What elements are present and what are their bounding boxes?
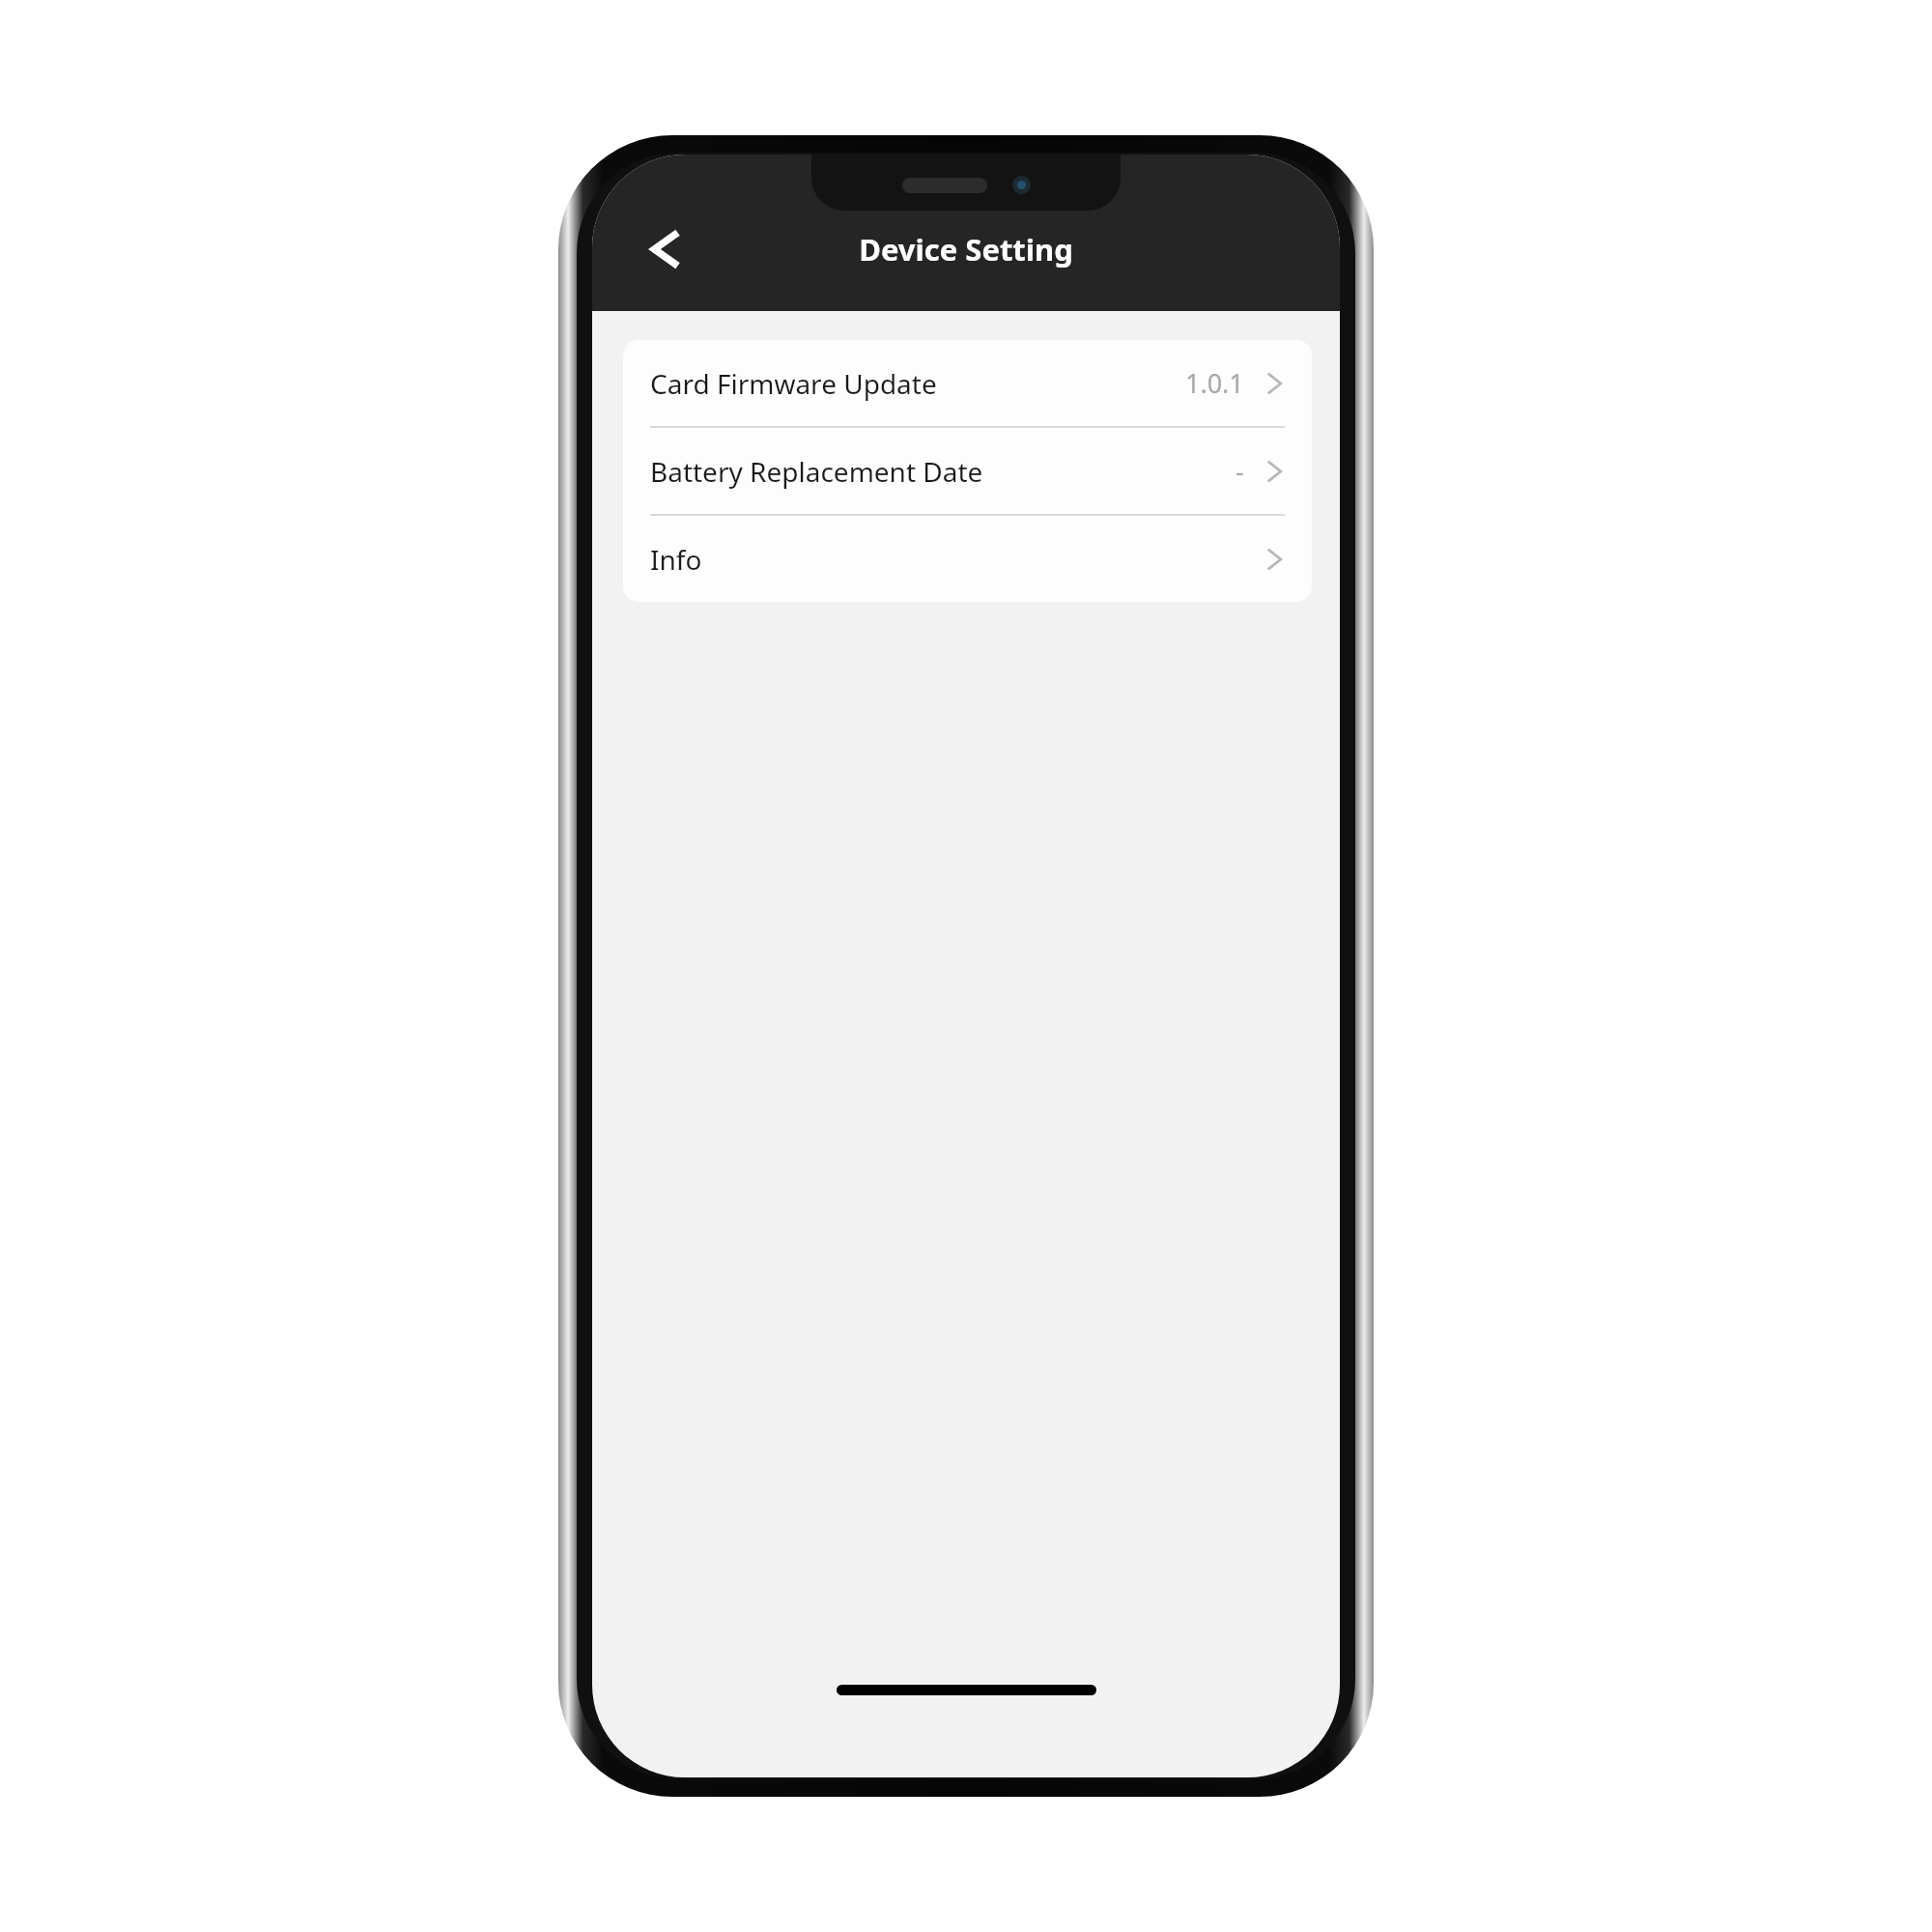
button[interactable]: Back	[631, 214, 700, 284]
button[interactable]: Battery Replacement Date	[623, 428, 1312, 514]
staticText: 1.0.1	[1185, 365, 1244, 401]
button[interactable]: Card Firmware Update	[623, 340, 1312, 426]
staticText: Info	[650, 541, 702, 578]
staticText: Device Setting	[592, 229, 1340, 270]
staticText: Battery Replacement Date	[650, 453, 983, 490]
staticText: -	[1236, 453, 1244, 489]
staticText: Card Firmware Update	[650, 365, 937, 402]
button[interactable]: Info	[623, 516, 1312, 602]
